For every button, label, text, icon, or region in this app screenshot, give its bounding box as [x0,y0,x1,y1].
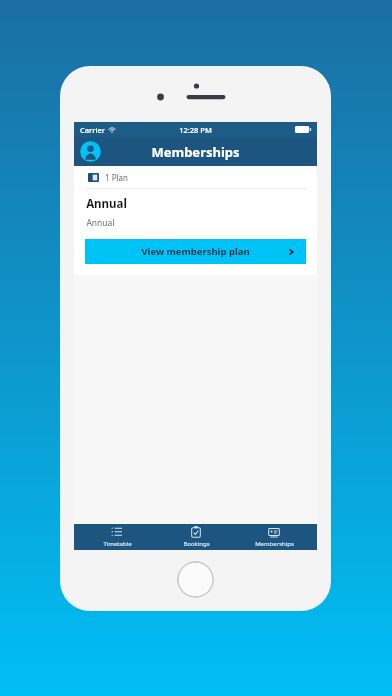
button[interactable]: Timetable [82,524,152,550]
staticText: Memberships [151,143,240,161]
button[interactable]: Bookings [161,524,231,550]
staticText: Bookings [183,540,210,548]
staticText: Memberships [255,540,294,548]
staticText: 12:28 PM [179,125,212,135]
staticText: Carrier [80,125,105,135]
staticText: Timetable [103,540,132,548]
staticText: Annual [86,196,127,212]
button[interactable]: Memberships [239,524,309,550]
staticText: Annual [86,217,115,229]
button[interactable]: View membership plan [85,239,306,264]
button[interactable]: Profile [80,141,101,162]
staticText: View membership plan [141,245,250,258]
button[interactable]: Home [177,561,214,598]
staticText: 1 Plan [105,172,128,183]
